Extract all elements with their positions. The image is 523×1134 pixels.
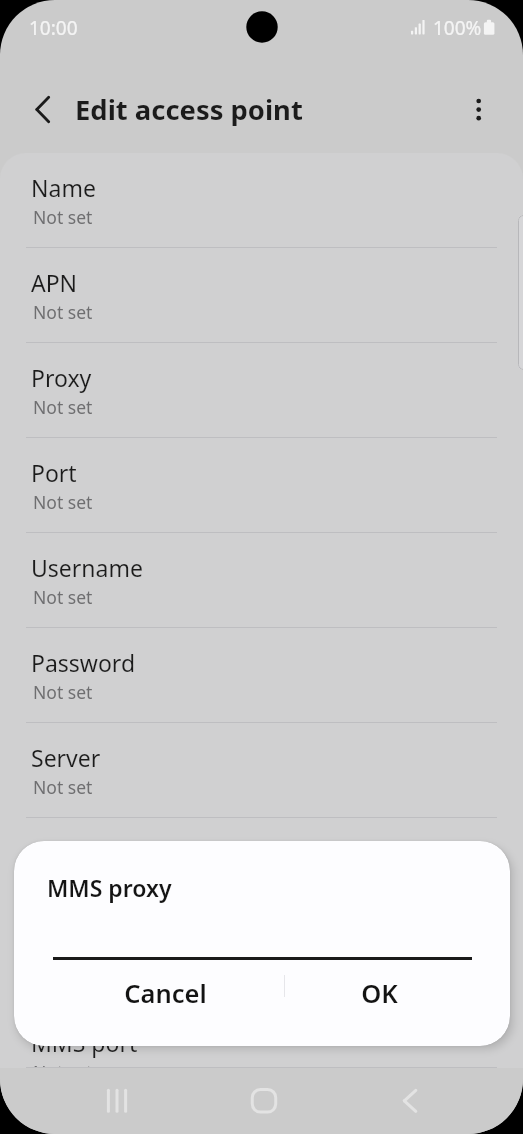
- button[interactable]: Cancel: [14, 963, 284, 1023]
- staticText: Proxy: [31, 362, 92, 393]
- staticText: Not set: [33, 300, 93, 324]
- button[interactable]: OK: [285, 963, 510, 1023]
- staticText: Password: [31, 647, 136, 678]
- staticText: OK: [361, 976, 398, 1011]
- staticText: Not set: [33, 775, 93, 799]
- staticText: Not set: [33, 395, 93, 419]
- button[interactable]: MMSC: [0, 818, 523, 913]
- button[interactable]: Name: [0, 153, 523, 248]
- button[interactable]: Proxy: [0, 343, 523, 438]
- staticText: APN: [31, 267, 78, 298]
- staticText: 10:00: [29, 15, 78, 41]
- staticText: 100%: [433, 15, 482, 41]
- staticText: Not set: [33, 585, 93, 609]
- button[interactable]: Port: [0, 438, 523, 533]
- button[interactable]: Navigate up: [13, 80, 61, 128]
- button[interactable]: APN: [0, 248, 523, 343]
- staticText: Name: [31, 172, 96, 203]
- button[interactable]: MMS port: [0, 1008, 523, 1068]
- staticText: Not set: [33, 870, 93, 894]
- staticText: MMS proxy: [47, 872, 172, 903]
- button[interactable]: More options: [462, 80, 510, 128]
- button[interactable]: Password: [0, 628, 523, 723]
- button[interactable]: MMS proxy: [0, 913, 523, 1008]
- staticText: Not set: [33, 490, 93, 514]
- button[interactable]: Back: [377, 1068, 443, 1134]
- staticText: MMS port: [31, 1027, 138, 1058]
- staticText: Not set: [33, 1060, 93, 1068]
- button[interactable]: Server: [0, 723, 523, 818]
- staticText: MMS proxy: [31, 932, 152, 963]
- staticText: Server: [31, 742, 101, 773]
- staticText: Cancel: [124, 976, 207, 1011]
- staticText: Username: [31, 552, 143, 583]
- staticText: Edit access point: [75, 91, 303, 128]
- staticText: Not set: [33, 680, 93, 704]
- button[interactable]: Username: [0, 533, 523, 628]
- button[interactable]: Recent apps: [84, 1068, 150, 1134]
- staticText: Not set: [33, 205, 93, 229]
- staticText: Port: [31, 457, 77, 488]
- button[interactable]: Home: [231, 1068, 297, 1134]
- staticText: MMSC: [31, 837, 100, 868]
